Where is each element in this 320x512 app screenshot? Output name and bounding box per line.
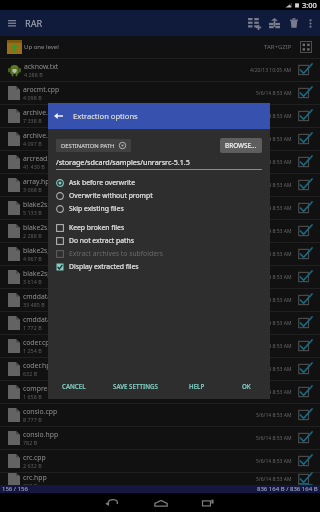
staticText: arcread.cpp (23, 154, 61, 163)
button[interactable]: array.hpp (0, 174, 320, 196)
button[interactable]: Navigation menu (2, 10, 21, 36)
button[interactable]: Back (51, 103, 65, 129)
button[interactable]: crc.hpp (0, 473, 320, 485)
staticText: archive.hpp (23, 131, 61, 140)
staticText: 5/6/14 8:53 AM (256, 274, 292, 281)
staticText: 5/6/14 8:53 AM (256, 435, 292, 442)
button[interactable]: blake2s.hpp (0, 220, 320, 242)
button[interactable]: OK (223, 378, 270, 394)
staticText: blake2s.hpp (23, 223, 62, 232)
staticText: 338 B (23, 482, 38, 485)
staticText: BROWSE... (225, 141, 257, 150)
button[interactable]: More options (304, 10, 317, 36)
button[interactable]: arocmt.cpp (0, 82, 320, 104)
staticText: 3:00 (302, 0, 317, 10)
staticText: 3 068 B (23, 186, 42, 193)
button[interactable]: archive.cpp (0, 105, 320, 127)
button[interactable]: archive.hpp (0, 128, 320, 150)
staticText: array.hpp (23, 177, 54, 186)
staticText: CANCEL (62, 382, 86, 390)
button[interactable]: coder.cpp (0, 335, 320, 357)
button[interactable]: Delete (284, 10, 304, 36)
button[interactable]: Overwrite without prompt (56, 189, 262, 202)
button[interactable]: acknow.txt (0, 59, 320, 81)
button[interactable]: Home (142, 493, 180, 512)
staticText: blake2sp.cpp (23, 269, 65, 278)
staticText: 33 485 B (23, 301, 45, 308)
staticText: 5/6/14 8:53 AM (256, 297, 292, 304)
button[interactable]: compress.hpp (0, 381, 320, 403)
staticText: cmddata.cpp (23, 292, 65, 301)
button[interactable]: Up one level (0, 36, 320, 58)
staticText: arocmt.cpp (23, 85, 60, 94)
staticText: compress.hpp (23, 384, 69, 393)
staticText: 5/6/14 8:53 AM (256, 205, 292, 212)
staticText: 5/6/14 8:53 AM (256, 159, 292, 166)
button[interactable]: DESTINATION PATH (56, 139, 131, 152)
button[interactable]: Recent apps (189, 493, 227, 512)
button[interactable]: Display extracted files (56, 260, 262, 273)
staticText: coder.cpp (23, 338, 54, 347)
button[interactable]: Extract (264, 10, 284, 36)
staticText: 7 338 B (23, 117, 42, 124)
staticText: 156 / 156 (2, 485, 28, 493)
button[interactable]: Ask before overwrite (56, 176, 262, 189)
staticText: 5/6/14 8:53 AM (256, 320, 292, 327)
staticText: 5/6/14 8:53 AM (256, 476, 292, 483)
button[interactable]: SAVE SETTINGS (100, 378, 171, 394)
staticText: 5/6/14 8:53 AM (256, 412, 292, 419)
staticText: 5/6/14 8:53 AM (256, 366, 292, 373)
staticText: 4 967 B (23, 255, 42, 262)
button[interactable]: cmddata.cpp (0, 289, 320, 311)
staticText: 41 430 B (23, 163, 45, 170)
staticText: Overwrite without prompt (69, 191, 153, 200)
staticText: 5/6/14 8:53 AM (256, 90, 292, 97)
staticText: 8 777 B (23, 416, 42, 423)
staticText: 2 632 B (23, 462, 42, 469)
button[interactable]: Skip existing files (56, 202, 262, 215)
button[interactable]: Add to archive (244, 10, 264, 36)
staticText: Extract archives to subfolders (69, 249, 164, 258)
button[interactable]: crc.cpp (0, 450, 320, 472)
button[interactable]: Back (93, 493, 131, 512)
staticText: blake2s.cpp (23, 200, 61, 209)
staticText: 5/6/14 8:53 AM (256, 182, 292, 189)
staticText: OK (242, 382, 251, 390)
staticText: 5/6/14 8:53 AM (256, 343, 292, 350)
staticText: 3 614 B (23, 278, 42, 285)
button[interactable]: CANCEL (48, 378, 100, 394)
button[interactable]: arcread.cpp (0, 151, 320, 173)
staticText: 1 658 B (23, 393, 42, 400)
button[interactable]: Keep broken files (56, 221, 262, 234)
button[interactable]: cmddata.hpp (0, 312, 320, 334)
staticText: 5/6/14 8:53 AM (256, 113, 292, 120)
button[interactable]: coder.hpp (0, 358, 320, 380)
staticText: blake2s_sse.cpp (23, 246, 75, 255)
button[interactable]: blake2s_sse.cpp (0, 243, 320, 265)
staticText: /storage/sdcard/samples/unrarsrc-5.1.5 (56, 157, 190, 167)
button[interactable]: HELP (171, 378, 223, 394)
staticText: 782 B (23, 439, 38, 446)
button[interactable]: blake2s.cpp (0, 197, 320, 219)
button[interactable]: Do not extract paths (56, 234, 262, 247)
staticText: 5/6/14 8:53 AM (256, 136, 292, 143)
staticText: 4/20/13 10:05 AM (250, 67, 292, 74)
button[interactable]: Extract archives to subfolders (56, 247, 262, 260)
staticText: 4 097 B (23, 140, 42, 147)
button[interactable]: consio.hpp (0, 427, 320, 449)
staticText: 836 164 B / 836 164 B (257, 485, 318, 493)
staticText: crc.hpp (23, 473, 47, 482)
staticText: consio.cpp (23, 407, 58, 416)
staticText: cmddata.hpp (23, 315, 66, 324)
staticText: RAR (25, 17, 43, 30)
staticText: Skip existing files (69, 204, 124, 213)
staticText: 632 B (23, 370, 38, 377)
staticText: archive.cpp (23, 108, 60, 117)
staticText: 2 288 B (23, 232, 42, 239)
staticText: Extraction options (73, 111, 138, 121)
button[interactable]: blake2sp.cpp (0, 266, 320, 288)
staticText: HELP (189, 382, 205, 390)
button[interactable]: consio.cpp (0, 404, 320, 426)
staticText: Up one level (24, 43, 59, 51)
button[interactable]: BROWSE... (220, 138, 262, 153)
